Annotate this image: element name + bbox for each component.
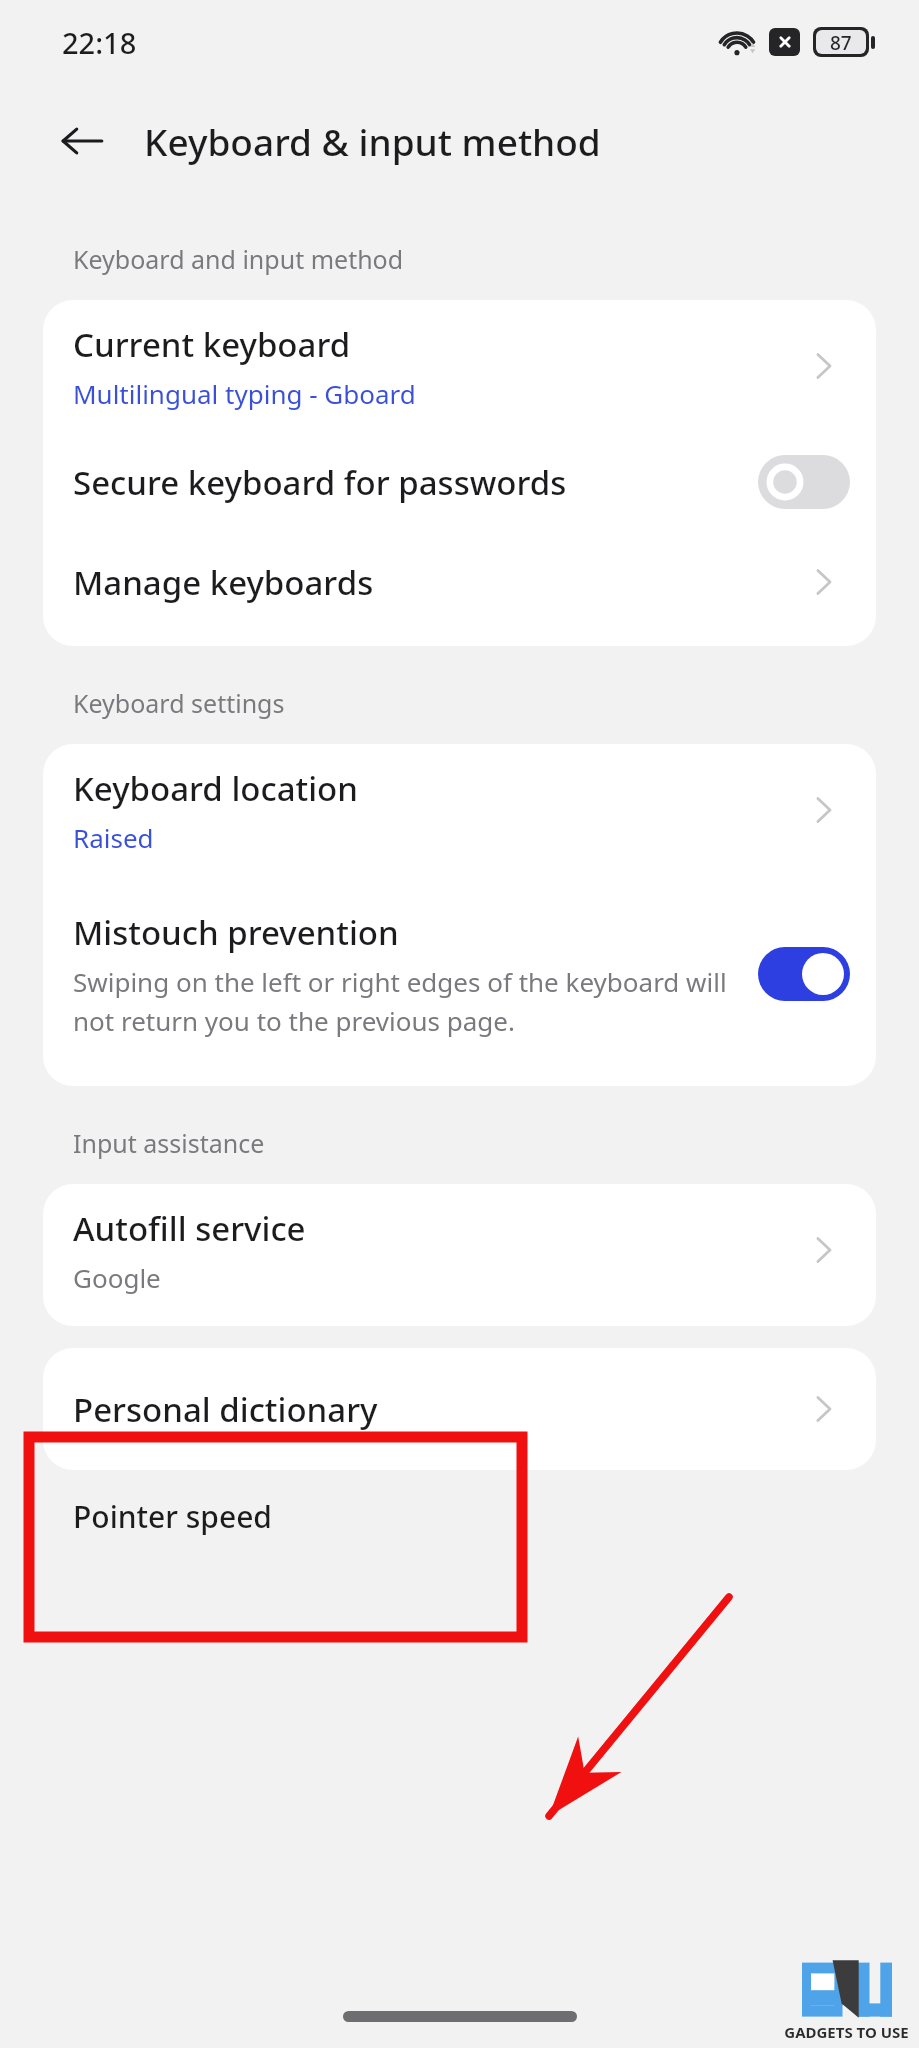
button[interactable]: Personal dictionary xyxy=(43,1348,876,1470)
staticText: Manage keyboards xyxy=(73,560,374,605)
button[interactable]: Back xyxy=(46,105,118,177)
staticText: Current keyboard xyxy=(73,322,351,367)
button[interactable]: Secure keyboard toggle, off xyxy=(758,455,850,509)
staticText: Personal dictionary xyxy=(73,1387,378,1432)
staticText: Autofill service xyxy=(73,1206,306,1251)
staticText: Mistouch prevention xyxy=(73,910,399,955)
staticText: Input assistance xyxy=(73,1126,265,1160)
button[interactable]: Mistouch prevention xyxy=(43,876,876,1072)
button[interactable]: Autofill service xyxy=(43,1184,876,1316)
button[interactable]: Keyboard location xyxy=(43,744,876,876)
staticText: Multilingual typing - Gboard xyxy=(73,376,416,411)
staticText: Keyboard location xyxy=(73,766,358,811)
staticText: 22:18 xyxy=(62,23,137,62)
staticText: Pointer speed xyxy=(73,1496,272,1537)
staticText: 87 xyxy=(830,30,852,54)
staticText: Keyboard settings xyxy=(73,686,285,720)
staticText: GADGETS TO USE xyxy=(784,2022,909,2042)
staticText: Secure keyboard for passwords xyxy=(73,460,567,505)
staticText: Swiping on the left or right edges of th… xyxy=(73,964,744,1038)
button[interactable]: Current keyboard xyxy=(43,300,876,432)
button[interactable]: Manage keyboards xyxy=(43,532,876,632)
staticText: Keyboard and input method xyxy=(73,242,404,276)
staticText: Raised xyxy=(73,820,154,855)
staticText: Keyboard & input method xyxy=(144,116,601,166)
button[interactable]: Secure keyboard for passwords xyxy=(43,432,876,532)
staticText: Google xyxy=(73,1260,161,1295)
button[interactable]: Mistouch prevention toggle, on xyxy=(758,947,850,1001)
